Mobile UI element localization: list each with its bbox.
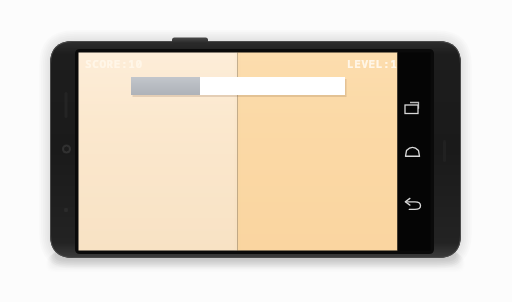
- staticText: LEVEL:1: [347, 56, 398, 71]
- button[interactable]: Back: [398, 188, 431, 242]
- button[interactable]: Home: [398, 134, 431, 188]
- staticText: SCORE:10: [85, 56, 143, 71]
- button[interactable]: Game field: [79, 53, 398, 251]
- button[interactable]: Recent apps: [398, 80, 431, 134]
